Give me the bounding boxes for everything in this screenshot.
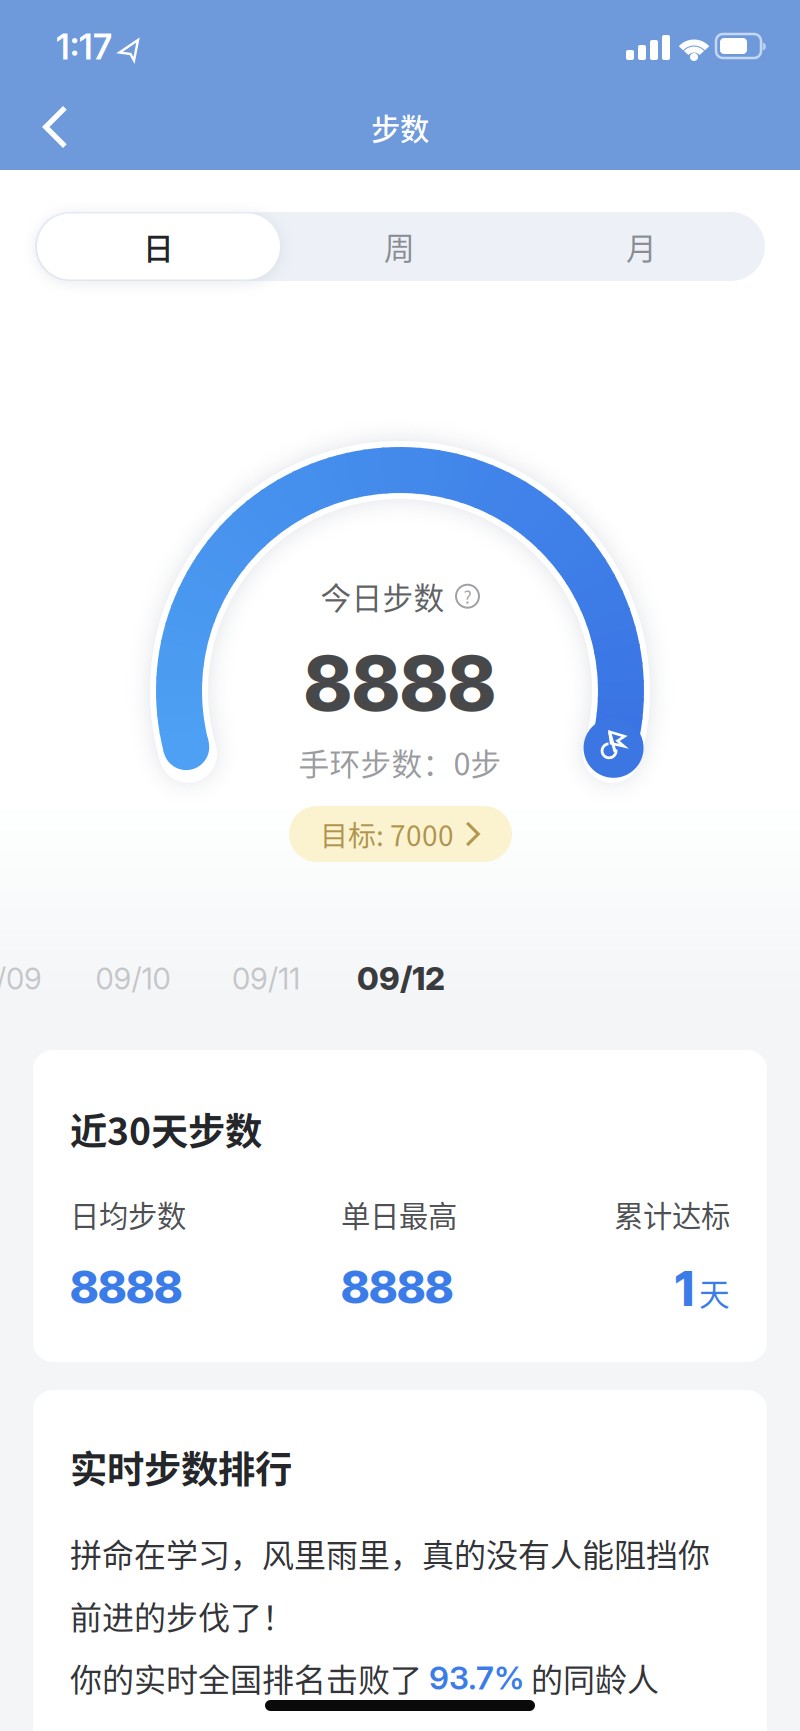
staticText: 拼命在学习，风里雨里，真的没有人能阻挡你 [70,1530,710,1576]
staticText: 天 [699,1270,730,1314]
button[interactable]: Help [455,584,479,608]
button[interactable]: 周 [278,212,521,281]
staticText: 前进的步伐了！ [70,1592,294,1639]
staticText: 09/12 [357,959,445,998]
staticText: 实时步数排行 [70,1440,292,1494]
staticText: 1 [675,1259,694,1318]
staticText: 月 [626,224,657,269]
button[interactable]: /09 [0,961,42,996]
staticText: 8888 [70,1259,182,1314]
staticText: 近30天步数 [70,1102,262,1156]
staticText: 目标: 7000 [320,814,454,854]
staticText: 8888 [304,637,496,729]
button[interactable]: 09/10 [63,961,203,996]
staticText: /09 [0,961,42,996]
button[interactable]: Back [28,102,96,152]
staticText: 1:17 [56,26,112,68]
staticText: 的同龄人 [524,1655,659,1701]
staticText: 93.7% [429,1658,524,1697]
staticText: 日均步数 [70,1193,186,1235]
staticText: 09/10 [95,961,170,996]
staticText: 周 [384,224,415,269]
button[interactable]: 09/11 [196,961,336,996]
staticText: 单日最高 [341,1193,457,1235]
staticText: 8888 [341,1259,453,1314]
staticText: 手环步数：0步 [298,740,501,784]
staticText: 今日步数 [320,574,444,618]
staticText: 累计达标 [614,1193,730,1235]
staticText: 日 [143,224,174,269]
button[interactable]: 目标: 7000 [289,806,512,862]
button[interactable]: 日 [37,212,280,281]
button[interactable]: 09/12 [326,959,476,998]
staticText: 你的实时全国排名击败了 [70,1655,429,1701]
button[interactable]: 月 [520,212,763,281]
staticText: 09/11 [232,961,300,996]
staticText: 步数 [371,106,429,148]
staticText: ? [463,584,471,609]
